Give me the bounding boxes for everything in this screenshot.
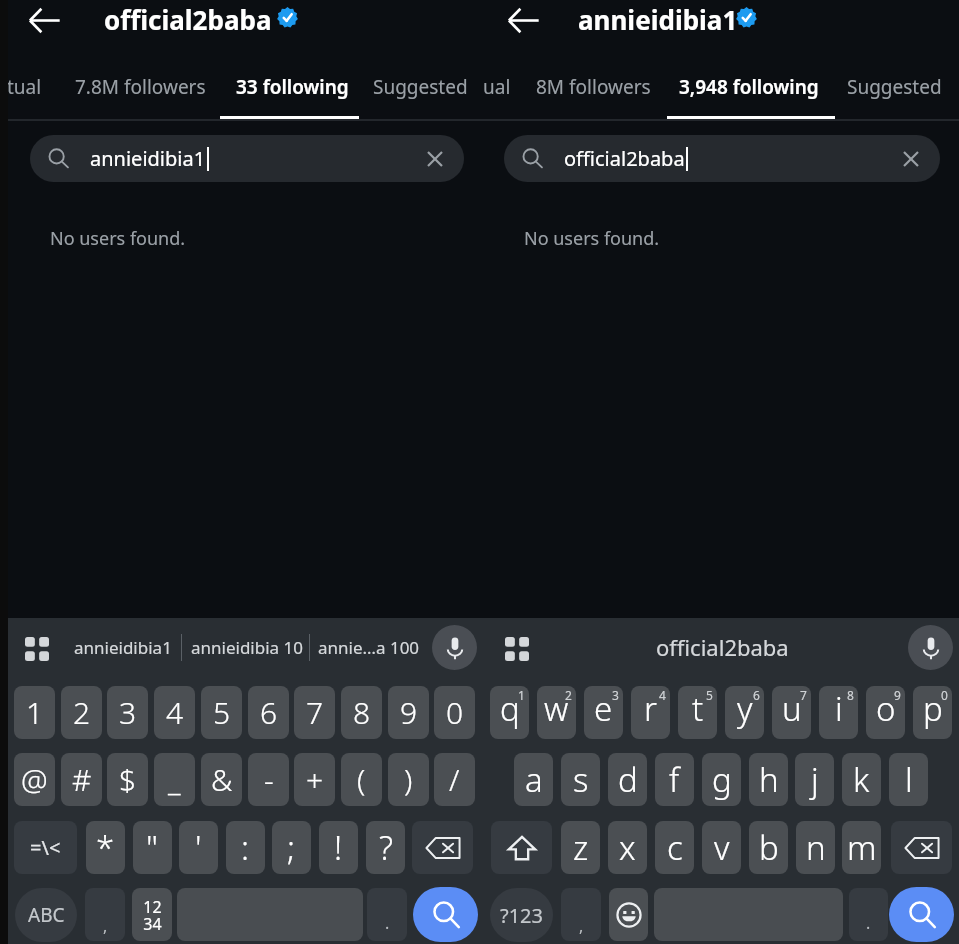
button[interactable]: ' — [179, 821, 218, 874]
staticText: l — [905, 757, 913, 802]
button[interactable]: 8 — [341, 686, 382, 739]
button[interactable]: , — [85, 888, 125, 941]
button[interactable]: Search — [889, 887, 954, 942]
button[interactable]: Backspace — [412, 821, 473, 874]
button[interactable]: l — [889, 753, 928, 806]
button[interactable]: Search — [413, 887, 478, 942]
staticText: No users found. — [524, 226, 660, 251]
button[interactable]: 2 — [537, 686, 576, 739]
button[interactable]: 4 — [154, 686, 195, 739]
button[interactable]: 7 — [294, 686, 335, 739]
button[interactable]: ; — [272, 821, 311, 874]
button[interactable]: annie…a 100 — [318, 636, 420, 659]
button[interactable]: g — [702, 753, 741, 806]
button[interactable]: . — [367, 888, 407, 941]
button[interactable]: official2baba — [656, 632, 789, 662]
button[interactable]: * — [86, 821, 125, 874]
button[interactable]: 9 — [388, 686, 429, 739]
button[interactable]: + — [294, 753, 335, 806]
button[interactable]: - — [248, 753, 289, 806]
button[interactable]: 6 — [725, 686, 764, 739]
button[interactable]: 3 — [584, 686, 623, 739]
button[interactable]: annieidibia1 — [30, 135, 464, 182]
button[interactable]: 1 — [490, 686, 529, 739]
staticText: 5 — [213, 692, 231, 733]
button[interactable]: 0 — [913, 686, 952, 739]
button[interactable]: 3 — [107, 686, 148, 739]
staticText: 5 — [706, 687, 713, 703]
staticText: 6 — [260, 692, 278, 733]
button[interactable]: 1 — [14, 686, 55, 739]
button[interactable]: x — [608, 821, 647, 874]
button[interactable]: ( — [341, 753, 382, 806]
button[interactable]: Apps — [505, 637, 529, 661]
button[interactable]: ! — [319, 821, 358, 874]
button[interactable]: annieidibia 10 — [191, 636, 303, 659]
button[interactable]: 9 — [866, 686, 905, 739]
button[interactable]: 5 — [201, 686, 242, 739]
button[interactable]: m — [842, 821, 881, 874]
button[interactable]: ?123 — [490, 888, 553, 942]
button[interactable]: . — [849, 888, 888, 941]
button[interactable]: 4 — [631, 686, 670, 739]
button[interactable]: Clear — [890, 138, 932, 180]
button[interactable]: # — [61, 753, 102, 806]
button[interactable]: s — [561, 753, 600, 806]
button[interactable]: 8M followers — [536, 74, 651, 100]
staticText: 12 34 — [143, 896, 162, 934]
button[interactable]: ? — [366, 821, 405, 874]
button[interactable]: ABC — [15, 888, 77, 942]
button[interactable]: annieidibia1 — [74, 636, 172, 659]
button[interactable]: Suggested — [373, 74, 468, 100]
button[interactable]: : — [226, 821, 265, 874]
staticText: 7 — [800, 687, 807, 703]
button[interactable]: Clear — [414, 138, 456, 180]
button[interactable]: v — [702, 821, 741, 874]
button[interactable]: Voice input — [432, 625, 477, 670]
button[interactable]: Backspace — [891, 821, 952, 874]
button[interactable]: $ — [107, 753, 148, 806]
button[interactable]: Shift — [491, 821, 552, 874]
staticText: . — [385, 912, 390, 934]
button[interactable]: Back — [508, 5, 539, 36]
button[interactable]: " — [133, 821, 172, 874]
button[interactable]: 8 — [819, 686, 858, 739]
button[interactable]: Suggested — [847, 74, 942, 100]
button[interactable]: @ — [14, 753, 55, 806]
button[interactable]: 2 — [61, 686, 102, 739]
staticText: 0 — [941, 687, 948, 703]
staticText: b — [759, 825, 779, 870]
button[interactable]: k — [842, 753, 881, 806]
button[interactable]: a — [514, 753, 553, 806]
button[interactable]: Apps — [25, 637, 49, 661]
button[interactable]: j — [795, 753, 834, 806]
button[interactable]: _ — [154, 753, 195, 806]
button[interactable]: f — [655, 753, 694, 806]
button[interactable]: 5 — [678, 686, 717, 739]
button[interactable]: z — [561, 821, 600, 874]
button[interactable]: / — [434, 753, 475, 806]
button[interactable]: 33 following — [236, 74, 349, 100]
button[interactable]: Back — [29, 5, 60, 36]
button[interactable]: c — [655, 821, 694, 874]
staticText: d — [618, 757, 638, 802]
button[interactable]: Emoji — [609, 888, 648, 941]
button[interactable]: & — [201, 753, 242, 806]
button[interactable]: official2baba — [504, 135, 940, 182]
button[interactable]: n — [796, 821, 835, 874]
button[interactable]: 12 34 — [132, 888, 172, 941]
button[interactable]: , — [561, 888, 601, 941]
button[interactable]: 0 — [434, 686, 475, 739]
button[interactable]: d — [608, 753, 647, 806]
button[interactable]: ) — [388, 753, 429, 806]
button[interactable]: 6 — [248, 686, 289, 739]
button[interactable]: =\< — [14, 821, 77, 874]
button[interactable]: 3,948 following — [679, 74, 819, 100]
button[interactable]: 7.8M followers — [75, 74, 206, 100]
button[interactable]: 7 — [772, 686, 811, 739]
button[interactable]: Voice input — [908, 625, 953, 670]
button[interactable]: h — [749, 753, 788, 806]
button[interactable]: b — [749, 821, 788, 874]
